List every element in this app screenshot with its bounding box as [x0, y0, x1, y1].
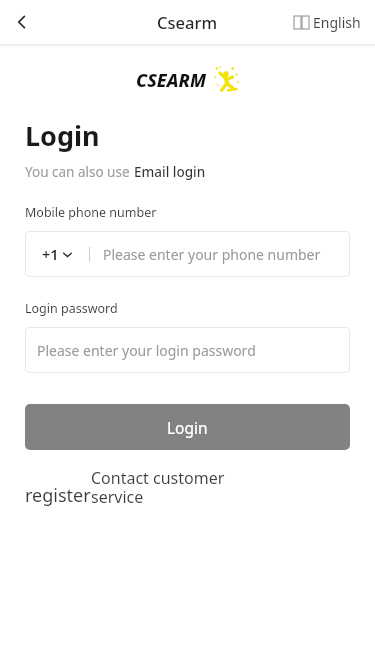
button[interactable]: Please enter your login password	[25, 327, 350, 373]
staticText: Please enter your login password	[37, 341, 256, 360]
staticText: Csearm	[157, 11, 218, 33]
button[interactable]: Email login	[134, 163, 206, 181]
button[interactable]: English	[294, 13, 361, 32]
staticText: Contact customer service	[91, 467, 273, 508]
staticText: English	[313, 13, 361, 32]
button[interactable]: register	[25, 483, 91, 508]
button[interactable]: Login	[25, 404, 350, 450]
staticText: Mobile phone number	[25, 204, 157, 221]
button[interactable]: +1	[25, 231, 350, 277]
staticText: Login	[167, 417, 208, 438]
staticText: +1	[42, 244, 59, 264]
staticText: You can also use	[25, 163, 134, 181]
staticText: Login	[25, 117, 100, 154]
button[interactable]: Contact customer service	[91, 467, 273, 508]
staticText: Please enter your phone number	[103, 245, 321, 264]
staticText: register	[25, 483, 91, 508]
staticText: CSEARM	[136, 68, 206, 93]
button[interactable]: Back	[0, 0, 44, 44]
staticText: Email login	[134, 163, 206, 181]
staticText: Login password	[25, 300, 118, 317]
